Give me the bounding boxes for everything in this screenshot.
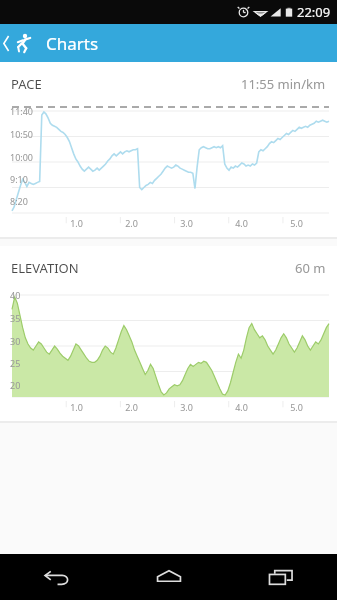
staticText: 10:50 — [10, 128, 34, 140]
staticText: 2.0 — [125, 217, 138, 229]
button[interactable]: Home — [113, 554, 225, 600]
staticText: 25 — [10, 357, 21, 369]
staticText: 35 — [10, 312, 21, 324]
staticText: 40 — [10, 289, 21, 301]
staticText: 20 — [10, 379, 21, 391]
button[interactable]: PACE — [0, 62, 337, 239]
staticText: PACE — [11, 75, 42, 93]
staticText: 10:00 — [10, 151, 34, 163]
staticText: 5.0 — [290, 217, 303, 229]
button[interactable]: Back — [0, 24, 36, 62]
button[interactable]: ELEVATION — [0, 246, 337, 423]
button[interactable]: Back — [0, 554, 113, 600]
staticText: 1.0 — [70, 217, 83, 229]
staticText: 4.0 — [235, 217, 248, 229]
staticText: 3.0 — [180, 401, 193, 413]
staticText: 3.0 — [180, 217, 193, 229]
staticText: 8:20 — [10, 195, 28, 207]
staticText: 5.0 — [290, 401, 303, 413]
staticText: 60 m — [295, 259, 326, 277]
staticText: 4.0 — [235, 401, 248, 413]
staticText: 11:55 min/km — [241, 75, 326, 93]
staticText: 11:40 — [10, 105, 34, 117]
staticText: ELEVATION — [11, 259, 79, 277]
staticText: 22:09 — [297, 3, 331, 21]
staticText: 30 — [10, 335, 21, 347]
staticText: 2.0 — [125, 401, 138, 413]
button[interactable]: Recent apps — [225, 554, 337, 600]
staticText: Charts — [46, 32, 99, 55]
staticText: 9:10 — [10, 173, 28, 185]
staticText: 1.0 — [70, 401, 83, 413]
